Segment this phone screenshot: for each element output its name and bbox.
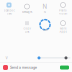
button[interactable]: Messages: [18, 4, 36, 14]
button[interactable]: Expand: [3, 55, 10, 61]
staticText: N: [42, 3, 47, 10]
staticText: More: [60, 27, 66, 30]
staticText: v: [5, 55, 7, 60]
staticText: Photo: [59, 9, 67, 12]
staticText: Save: [6, 12, 11, 15]
button[interactable]: More: [54, 21, 72, 33]
staticText: Messages: [22, 10, 32, 14]
staticText: Link: [25, 30, 29, 33]
button[interactable]: Save: [36, 22, 54, 32]
button[interactable]: Scan Doc: [0, 2, 18, 15]
staticText: Scan Doc: [3, 9, 14, 12]
staticText: Apps: [59, 30, 66, 33]
staticText: Album: [59, 12, 67, 15]
button[interactable]: Copy: [18, 21, 36, 33]
button[interactable]: Photo: [54, 2, 72, 15]
button[interactable]: Send: [60, 65, 69, 69]
staticText: Save: [42, 29, 47, 32]
staticText: N: [44, 10, 46, 14]
staticText: Send a message: [10, 65, 37, 69]
staticText: Copy: [23, 27, 30, 30]
button[interactable]: N: [36, 4, 54, 14]
